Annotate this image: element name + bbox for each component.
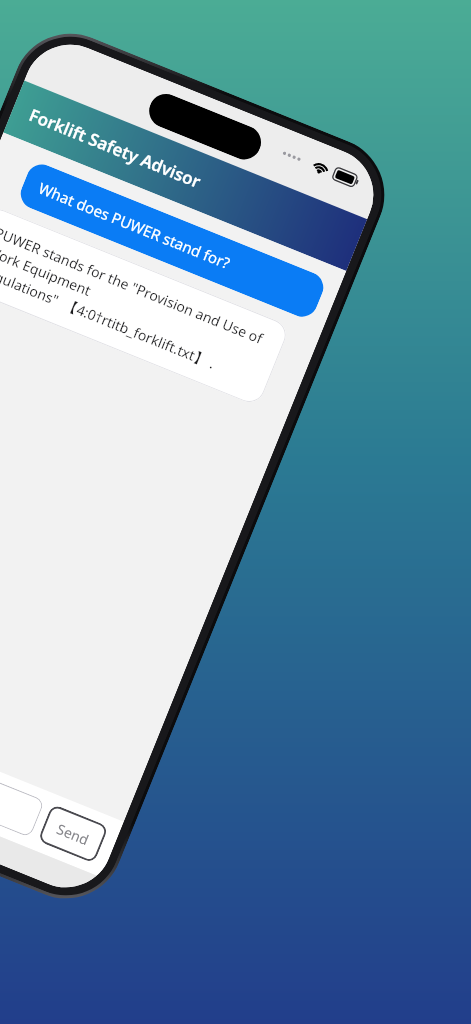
staticText: What does PUWER stand for? [36, 178, 233, 273]
button[interactable]: What does PUWER stand for? [16, 160, 328, 321]
staticText: Send [54, 819, 92, 849]
button[interactable]: PUWER stands for the "Provision and Use … [0, 204, 291, 407]
staticText: Forklift Safety Advisor [26, 103, 204, 193]
button[interactable]: Send [37, 804, 109, 864]
staticText: PUWER stands for the "Provision and Use … [0, 222, 271, 389]
button[interactable]: Ask your question… [0, 729, 45, 838]
